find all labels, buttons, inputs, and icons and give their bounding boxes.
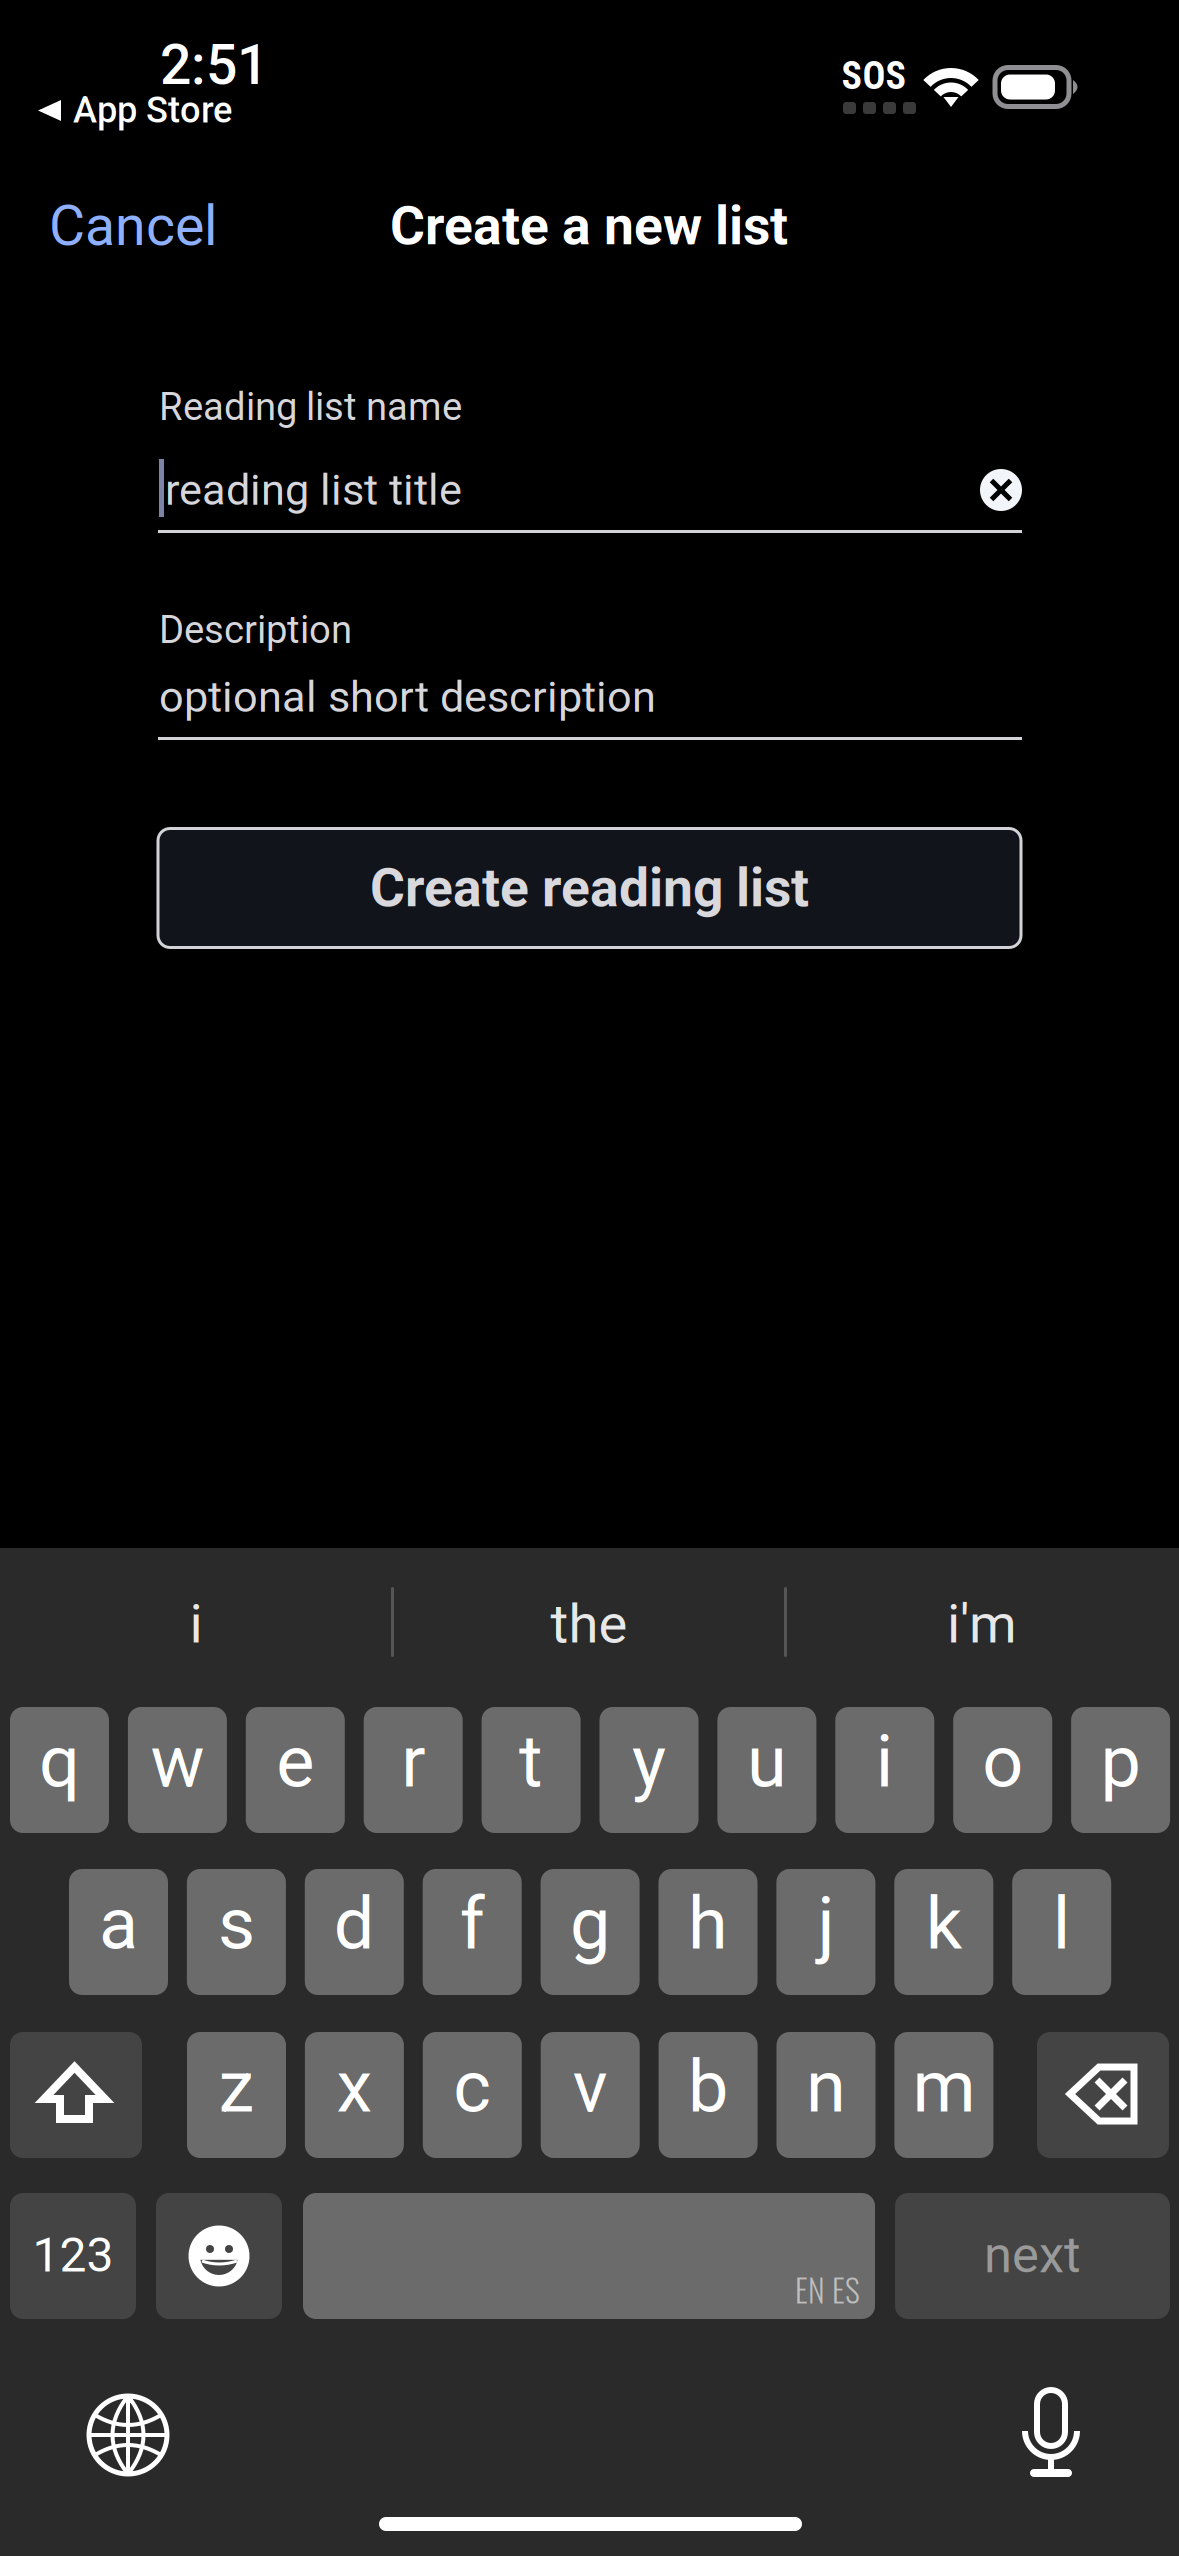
staticText: Cancel bbox=[49, 194, 217, 258]
staticText: n bbox=[806, 2045, 846, 2129]
button[interactable]: a bbox=[69, 1869, 168, 1995]
button[interactable]: Emoji keyboard bbox=[156, 2193, 282, 2319]
staticText: g bbox=[570, 1882, 610, 1966]
button[interactable]: c bbox=[423, 2032, 522, 2158]
button[interactable]: 123 bbox=[10, 2193, 136, 2319]
staticText: h bbox=[688, 1882, 728, 1966]
staticText: o bbox=[982, 1720, 1023, 1804]
button[interactable]: w bbox=[128, 1707, 227, 1833]
staticText: z bbox=[218, 2045, 254, 2129]
staticText: q bbox=[39, 1720, 80, 1804]
button[interactable]: r bbox=[364, 1707, 463, 1833]
staticText: k bbox=[926, 1882, 962, 1966]
button[interactable]: k bbox=[894, 1869, 993, 1995]
button[interactable]: h bbox=[658, 1869, 757, 1995]
button[interactable]: u bbox=[717, 1707, 816, 1833]
button[interactable]: b bbox=[659, 2032, 758, 2158]
button[interactable]: Next keyboard bbox=[73, 2380, 183, 2490]
staticText: optional short description bbox=[159, 672, 656, 722]
staticText: y bbox=[632, 1720, 666, 1804]
button[interactable]: Cancel bbox=[49, 178, 279, 274]
button[interactable]: d bbox=[305, 1869, 404, 1995]
button[interactable]: n bbox=[776, 2032, 875, 2158]
staticText: Create reading list bbox=[370, 857, 809, 919]
staticText: r bbox=[401, 1720, 425, 1804]
button[interactable]: Space bbox=[303, 2193, 875, 2319]
button[interactable]: f bbox=[423, 1869, 522, 1995]
button[interactable]: Shift bbox=[10, 2032, 142, 2158]
button[interactable]: e bbox=[246, 1707, 345, 1833]
button[interactable]: next bbox=[895, 2193, 1170, 2319]
staticText: Description bbox=[159, 608, 352, 652]
staticText: l bbox=[1053, 1882, 1071, 1966]
staticText: Create a new list bbox=[390, 195, 788, 257]
staticText: a bbox=[99, 1882, 138, 1966]
staticText: b bbox=[688, 2045, 728, 2129]
button[interactable]: s bbox=[187, 1869, 286, 1995]
staticText: i'm bbox=[947, 1592, 1017, 1656]
staticText: 123 bbox=[32, 2227, 113, 2283]
button[interactable]: x bbox=[305, 2032, 404, 2158]
button[interactable]: y bbox=[599, 1707, 698, 1833]
staticText: reading list title bbox=[165, 465, 462, 515]
staticText: e bbox=[276, 1720, 314, 1804]
staticText: Reading list name bbox=[159, 385, 462, 429]
button[interactable]: m bbox=[894, 2032, 993, 2158]
staticText: v bbox=[573, 2045, 608, 2129]
staticText: f bbox=[460, 1882, 485, 1966]
button[interactable]: Delete bbox=[1037, 2032, 1169, 2158]
button[interactable]: q bbox=[10, 1707, 109, 1833]
staticText: EN ES bbox=[795, 2265, 860, 2313]
button[interactable]: t bbox=[482, 1707, 581, 1833]
staticText: c bbox=[453, 2045, 491, 2129]
staticText: 2:51 bbox=[160, 33, 268, 97]
button[interactable]: Create reading list bbox=[158, 828, 1021, 947]
button[interactable]: j bbox=[776, 1869, 875, 1995]
staticText: s bbox=[218, 1882, 255, 1966]
button[interactable]: z bbox=[187, 2032, 286, 2158]
staticText: p bbox=[1101, 1720, 1141, 1804]
staticText: u bbox=[747, 1720, 787, 1804]
button[interactable]: i bbox=[835, 1707, 934, 1833]
button[interactable]: p bbox=[1071, 1707, 1170, 1833]
staticText: next bbox=[984, 2225, 1081, 2285]
staticText: t bbox=[519, 1720, 543, 1804]
staticText: the bbox=[550, 1592, 627, 1656]
staticText: i bbox=[189, 1592, 202, 1656]
button[interactable]: l bbox=[1012, 1869, 1111, 1995]
button[interactable]: g bbox=[541, 1869, 640, 1995]
staticText: w bbox=[150, 1720, 204, 1804]
button[interactable]: Dictation bbox=[996, 2380, 1106, 2490]
button[interactable]: v bbox=[541, 2032, 640, 2158]
staticText: i bbox=[876, 1720, 894, 1804]
staticText: j bbox=[817, 1882, 834, 1966]
staticText: x bbox=[336, 2045, 372, 2129]
button[interactable]: o bbox=[953, 1707, 1052, 1833]
staticText: m bbox=[912, 2045, 975, 2129]
staticText: d bbox=[334, 1882, 375, 1966]
staticText: App Store bbox=[73, 89, 232, 131]
button[interactable]: Clear text bbox=[970, 459, 1032, 521]
staticText: SOS bbox=[841, 54, 906, 98]
